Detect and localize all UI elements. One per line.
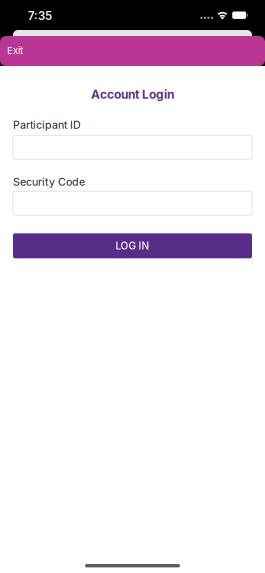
- staticText: Security Code: [13, 175, 85, 188]
- staticText: LOG IN: [115, 240, 149, 252]
- staticText: Account Login: [91, 87, 174, 101]
- staticText: 7:35: [28, 9, 52, 23]
- button[interactable]: LOG IN: [13, 233, 252, 258]
- staticText: Exit: [7, 45, 23, 56]
- staticText: Participant ID: [13, 118, 81, 131]
- button[interactable]: Exit: [0, 36, 33, 66]
